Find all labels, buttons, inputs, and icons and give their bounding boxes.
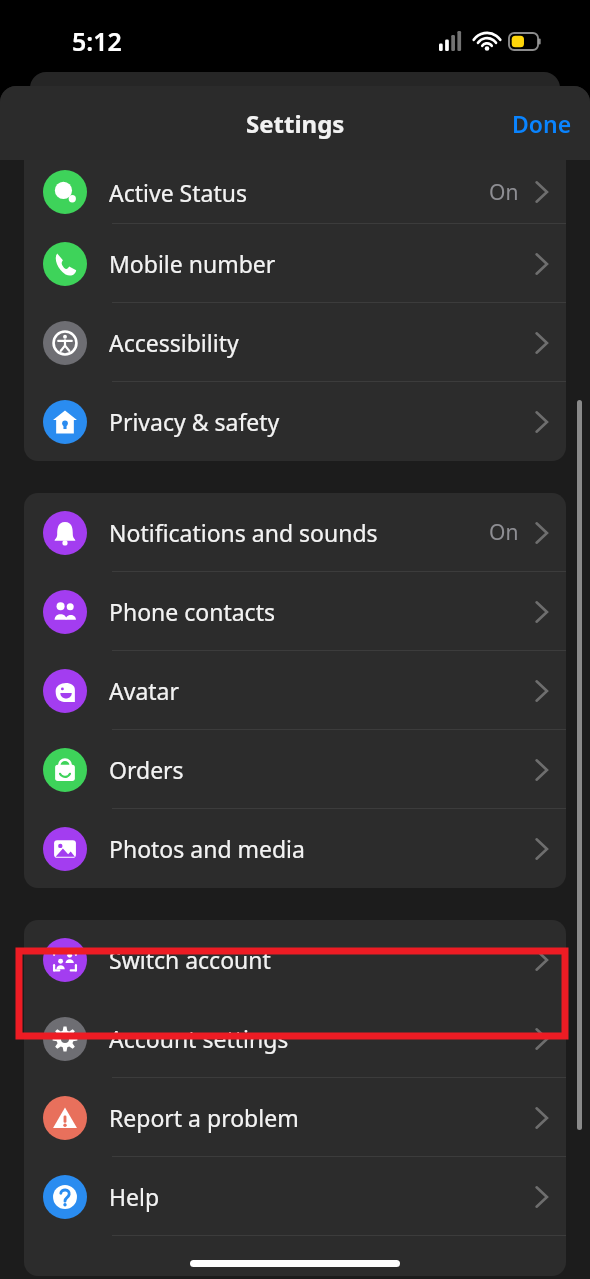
- button[interactable]: Active Status: [24, 160, 566, 224]
- button[interactable]: Notifications and sounds: [24, 493, 566, 572]
- button[interactable]: Avatar: [24, 651, 566, 730]
- button[interactable]: Privacy & safety: [24, 382, 566, 461]
- staticText: 5:12: [72, 24, 122, 58]
- staticText: Accessibility: [109, 327, 239, 358]
- staticText: On: [489, 518, 519, 547]
- staticText: On: [489, 178, 519, 207]
- staticText: Account settings: [109, 1023, 289, 1054]
- staticText: Mobile number: [109, 248, 276, 279]
- staticText: Active Status: [109, 177, 247, 208]
- button[interactable]: Phone contacts: [24, 572, 566, 651]
- staticText: Done: [512, 108, 572, 139]
- staticText: Phone contacts: [109, 596, 275, 627]
- staticText: Report a problem: [109, 1102, 299, 1133]
- staticText: Switch account: [109, 944, 271, 975]
- staticText: Photos and media: [109, 833, 305, 864]
- button[interactable]: Mobile number: [24, 224, 566, 303]
- button[interactable]: Done: [504, 100, 580, 147]
- button[interactable]: Account settings: [24, 999, 566, 1078]
- button[interactable]: Switch account: [24, 920, 566, 999]
- staticText: Orders: [109, 754, 184, 785]
- staticText: Help: [109, 1181, 160, 1212]
- button[interactable]: Photos and media: [24, 809, 566, 888]
- button[interactable]: Report a problem: [24, 1078, 566, 1157]
- staticText: Settings: [246, 107, 345, 140]
- button[interactable]: Accessibility: [24, 303, 566, 382]
- button[interactable]: Orders: [24, 730, 566, 809]
- staticText: Notifications and sounds: [109, 517, 378, 548]
- button[interactable]: Help: [24, 1157, 566, 1236]
- staticText: Privacy & safety: [109, 406, 280, 437]
- staticText: Avatar: [109, 675, 179, 706]
